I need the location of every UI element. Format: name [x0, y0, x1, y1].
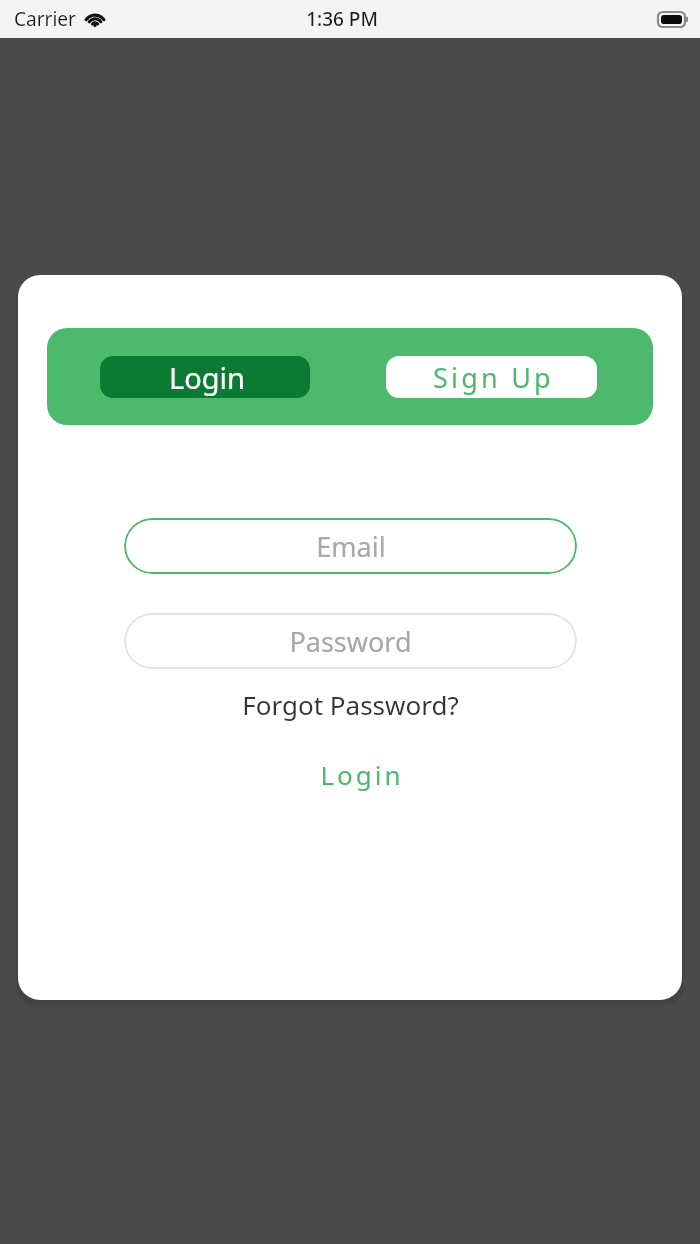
button[interactable]: Sign Up	[386, 356, 597, 398]
staticText: Forgot Password?	[242, 687, 459, 722]
button[interactable]: Password	[124, 613, 577, 669]
staticText: Email	[316, 528, 386, 565]
button[interactable]: Email	[124, 518, 577, 574]
staticText: Login	[169, 358, 245, 397]
staticText: Password	[289, 623, 412, 660]
button[interactable]: Login	[100, 356, 310, 398]
button[interactable]: Forgot Password?	[18, 683, 682, 726]
staticText: 1:36 PM	[306, 6, 378, 32]
staticText: Sign Up	[433, 359, 554, 396]
staticText: Carrier	[14, 6, 76, 32]
button[interactable]: Login	[18, 753, 682, 796]
staticText: Login	[320, 757, 404, 792]
